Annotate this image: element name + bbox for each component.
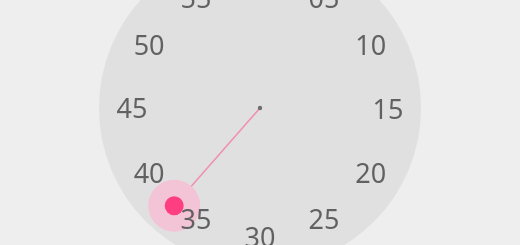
button[interactable]: Minute picker dial (0, 0, 520, 245)
